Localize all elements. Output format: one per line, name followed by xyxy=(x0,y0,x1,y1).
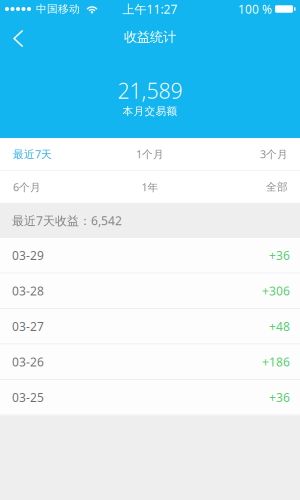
staticText: 3个月 xyxy=(260,147,288,161)
button[interactable]: Back xyxy=(0,18,39,56)
staticText: 21,589 xyxy=(117,76,182,105)
button[interactable]: 最近7天 xyxy=(0,138,100,170)
staticText: +186 xyxy=(262,354,290,370)
button[interactable]: 03-27 xyxy=(0,309,300,344)
button[interactable]: 3个月 xyxy=(200,138,300,170)
staticText: 6个月 xyxy=(13,180,41,194)
button[interactable]: 03-29 xyxy=(0,238,300,273)
staticText: +36 xyxy=(269,247,290,263)
button[interactable]: 6个月 xyxy=(0,171,100,203)
staticText: 本月交易额 xyxy=(122,105,177,118)
button[interactable]: 全部 xyxy=(200,171,300,203)
button[interactable]: 1年 xyxy=(100,171,200,203)
staticText: 上午11:27 xyxy=(122,1,177,17)
staticText: 100 % xyxy=(238,1,272,17)
staticText: 全部 xyxy=(266,180,288,193)
staticText: +306 xyxy=(262,283,290,299)
button[interactable]: 03-26 xyxy=(0,344,300,380)
staticText: 03-28 xyxy=(12,283,44,299)
staticText: 03-27 xyxy=(12,318,44,334)
staticText: 03-26 xyxy=(12,354,44,370)
staticText: 03-29 xyxy=(12,247,44,263)
staticText: 03-25 xyxy=(12,389,44,405)
staticText: 最近7天收益：6,542 xyxy=(12,212,122,228)
staticText: 收益统计 xyxy=(124,29,176,45)
staticText: 1年 xyxy=(141,180,158,194)
button[interactable]: 03-25 xyxy=(0,380,300,415)
staticText: 最近7天 xyxy=(13,147,52,161)
staticText: +36 xyxy=(269,389,290,405)
staticText: 1个月 xyxy=(136,147,164,161)
staticText: 中国移动 xyxy=(36,2,80,15)
staticText: +48 xyxy=(269,318,290,334)
button[interactable]: 03-28 xyxy=(0,273,300,309)
button[interactable]: 1个月 xyxy=(100,138,200,170)
